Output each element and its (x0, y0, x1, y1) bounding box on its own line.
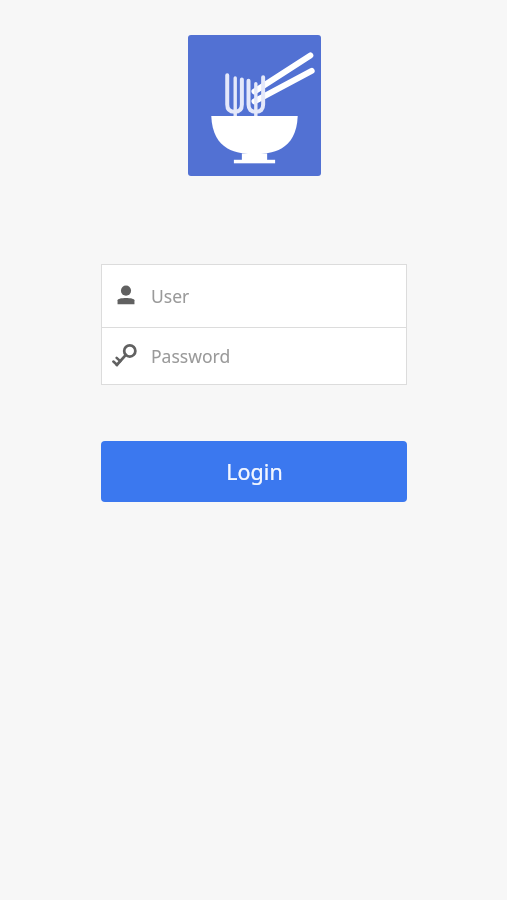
button[interactable]: Login (101, 441, 407, 502)
staticText: User (151, 284, 190, 308)
staticText: Password (151, 344, 231, 368)
staticText: Login (226, 457, 283, 486)
button[interactable]: User (102, 265, 406, 327)
button[interactable]: Password (102, 328, 406, 384)
